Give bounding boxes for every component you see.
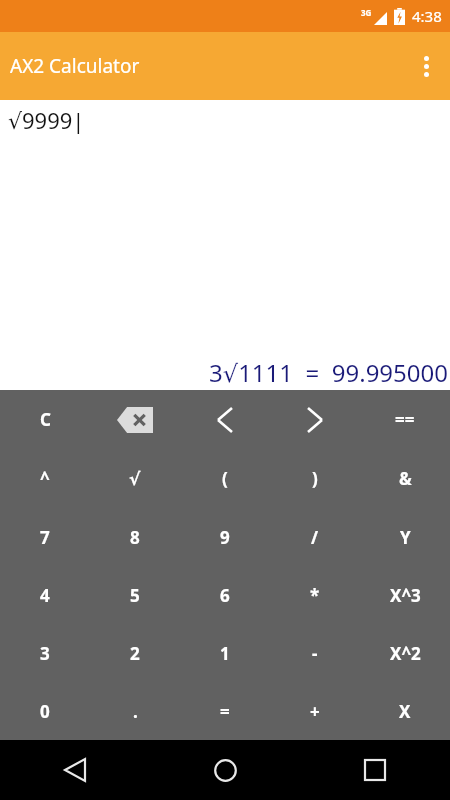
staticText: 4 bbox=[40, 584, 50, 607]
button[interactable]: ) bbox=[270, 449, 360, 508]
button[interactable]: ( bbox=[180, 449, 270, 508]
staticText: + bbox=[310, 700, 320, 723]
staticText: & bbox=[399, 467, 412, 490]
button[interactable]: Back bbox=[0, 740, 150, 800]
staticText: 4:38 bbox=[412, 6, 442, 26]
button[interactable]: Recent apps bbox=[300, 740, 450, 800]
staticText: 2 bbox=[130, 642, 140, 665]
staticText: 3G bbox=[361, 7, 372, 18]
button[interactable]: Backspace bbox=[90, 390, 180, 449]
staticText: 0 bbox=[40, 700, 50, 723]
button[interactable]: More options bbox=[402, 42, 450, 90]
button[interactable]: / bbox=[270, 508, 360, 566]
staticText: 3 bbox=[40, 642, 50, 665]
staticText: √ bbox=[129, 469, 141, 489]
button[interactable]: 2 bbox=[90, 624, 180, 682]
staticText: X^2 bbox=[390, 642, 421, 665]
staticText: X bbox=[399, 700, 411, 723]
staticText: 5 bbox=[130, 584, 140, 607]
button[interactable]: 7 bbox=[0, 508, 90, 566]
button[interactable]: . bbox=[90, 682, 180, 740]
button[interactable]: Home bbox=[150, 740, 300, 800]
button[interactable]: 9 bbox=[180, 508, 270, 566]
staticText: 6 bbox=[220, 584, 230, 607]
button[interactable]: 4 bbox=[0, 566, 90, 624]
button[interactable]: 6 bbox=[180, 566, 270, 624]
staticText: 3√1111 = 99.995000 bbox=[209, 356, 448, 389]
button[interactable]: 0 bbox=[0, 682, 90, 740]
button[interactable]: Move cursor right bbox=[270, 390, 360, 449]
button[interactable]: 8 bbox=[90, 508, 180, 566]
button[interactable]: == bbox=[360, 390, 450, 449]
button[interactable]: √ bbox=[90, 449, 180, 508]
button[interactable]: - bbox=[270, 624, 360, 682]
button[interactable]: + bbox=[270, 682, 360, 740]
button[interactable]: ^ bbox=[0, 449, 90, 508]
staticText: 8 bbox=[130, 526, 140, 549]
button[interactable]: 5 bbox=[90, 566, 180, 624]
staticText: = bbox=[220, 700, 230, 723]
button[interactable]: √9999| bbox=[8, 105, 85, 135]
staticText: Y bbox=[400, 526, 411, 549]
button[interactable]: X^2 bbox=[360, 624, 450, 682]
staticText: == bbox=[395, 408, 415, 431]
button[interactable]: X^3 bbox=[360, 566, 450, 624]
button[interactable]: = bbox=[180, 682, 270, 740]
staticText: ( bbox=[222, 467, 228, 490]
staticText: 1 bbox=[220, 642, 230, 665]
staticText: / bbox=[311, 526, 319, 549]
button[interactable]: C bbox=[0, 390, 90, 449]
button[interactable]: 3 bbox=[0, 624, 90, 682]
staticText: ^ bbox=[40, 467, 50, 490]
staticText: X^3 bbox=[390, 584, 421, 607]
staticText: AX2 Calculator bbox=[10, 53, 140, 79]
staticText: 7 bbox=[40, 526, 50, 549]
button[interactable]: Y bbox=[360, 508, 450, 566]
staticText: 9 bbox=[220, 526, 230, 549]
button[interactable]: & bbox=[360, 449, 450, 508]
staticText: C bbox=[40, 408, 51, 431]
staticText: ) bbox=[312, 467, 318, 490]
button[interactable]: Move cursor left bbox=[180, 390, 270, 449]
button[interactable]: 1 bbox=[180, 624, 270, 682]
staticText: . bbox=[133, 700, 138, 723]
staticText: * bbox=[310, 584, 320, 607]
staticText: - bbox=[312, 642, 318, 665]
button[interactable]: * bbox=[270, 566, 360, 624]
button[interactable]: X bbox=[360, 682, 450, 740]
